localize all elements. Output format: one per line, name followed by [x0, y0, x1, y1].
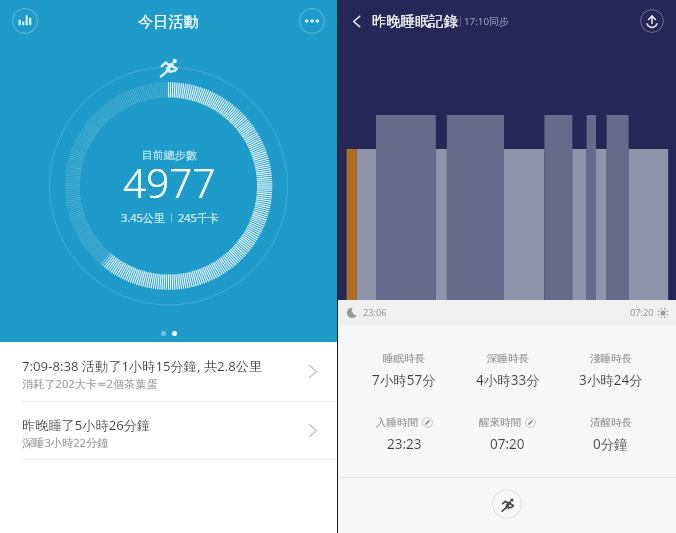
- staticText: 4小時33分: [476, 371, 540, 389]
- staticText: 3.45公里: [121, 210, 165, 225]
- staticText: 17:10同步: [464, 15, 509, 28]
- staticText: 07:20: [490, 435, 525, 453]
- staticText: 醒來時間: [479, 416, 521, 429]
- staticText: 3小時24分: [579, 371, 643, 389]
- staticText: 入睡時間: [376, 416, 418, 429]
- button[interactable]: More options: [299, 8, 325, 34]
- staticText: 23:23: [387, 435, 422, 453]
- button[interactable]: Share: [640, 9, 664, 33]
- staticText: 245千卡: [178, 210, 219, 225]
- staticText: 深睡3小時22分鐘: [22, 435, 109, 450]
- button[interactable]: Edit 醒來時間: [525, 417, 536, 428]
- staticText: 7:09-8:38 活動了1小時15分鐘, 共2.8公里: [22, 357, 263, 375]
- staticText: 昨晚睡眠記錄: [372, 12, 458, 30]
- staticText: 睡眠時長: [383, 352, 425, 365]
- staticText: 消耗了202大卡≈2個茶葉蛋: [22, 376, 158, 391]
- button[interactable]: Activity details: [492, 489, 522, 519]
- button[interactable]: Back: [345, 10, 367, 32]
- button[interactable]: Statistics: [12, 8, 38, 34]
- staticText: 今日活動: [138, 12, 199, 31]
- button[interactable]: 7:09-8:38 活動了1小時15分鐘, 共2.8公里: [0, 342, 337, 401]
- staticText: 0分鐘: [593, 435, 628, 453]
- staticText: 淺睡時長: [590, 352, 632, 365]
- button[interactable]: Edit 入睡時間: [422, 417, 433, 428]
- staticText: 4977: [123, 155, 216, 210]
- staticText: 目前總步數: [142, 148, 197, 162]
- staticText: 深睡時長: [487, 352, 529, 365]
- staticText: 07:20: [630, 306, 654, 319]
- staticText: 清醒時長: [590, 416, 632, 429]
- staticText: 23:06: [363, 306, 387, 319]
- button[interactable]: 昨晚睡了5小時26分鐘: [0, 402, 337, 459]
- staticText: 7小時57分: [372, 371, 436, 389]
- staticText: 昨晚睡了5小時26分鐘: [22, 416, 151, 434]
